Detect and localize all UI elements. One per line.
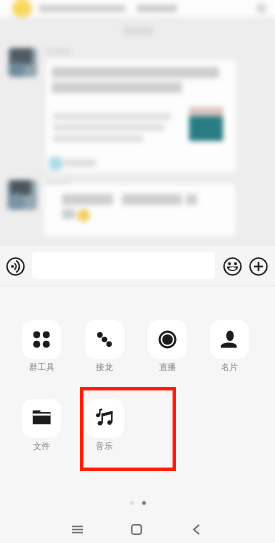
staticText: 接龙 (96, 362, 113, 373)
staticText: 直播 (159, 362, 176, 373)
staticText: 群工具 (29, 362, 55, 373)
button[interactable]: Home (122, 515, 151, 543)
button[interactable]: Voice input (1, 252, 29, 280)
button[interactable]: 群工具 (22, 320, 61, 373)
button[interactable]: 直播 (148, 320, 187, 373)
staticText: 音乐 (96, 441, 113, 452)
staticText: 名片 (221, 362, 238, 373)
button[interactable]: Recent apps (63, 515, 92, 543)
staticText: 文件 (33, 441, 50, 452)
button[interactable]: Emoji (218, 252, 246, 280)
button[interactable]: More options (244, 252, 272, 280)
button[interactable]: Back (182, 515, 211, 543)
button[interactable]: 名片 (210, 320, 249, 373)
button[interactable]: 音乐 (85, 399, 124, 452)
button[interactable]: 文件 (22, 399, 61, 452)
button[interactable]: 接龙 (85, 320, 124, 373)
